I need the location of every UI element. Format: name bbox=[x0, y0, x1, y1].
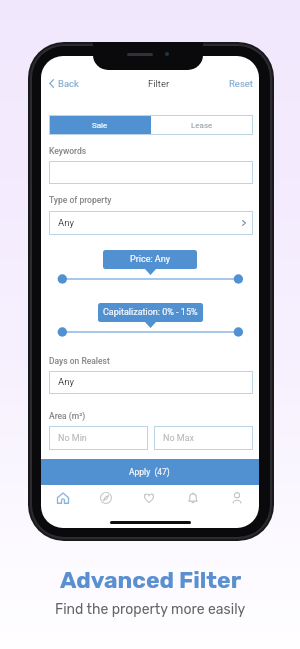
button[interactable]: Notifications bbox=[171, 484, 215, 512]
button[interactable]: Apply (47) bbox=[41, 459, 259, 485]
staticText: Area (m²) bbox=[49, 411, 86, 421]
staticText: Any bbox=[58, 376, 74, 387]
staticText: Advanced Filter bbox=[60, 566, 242, 593]
staticText: No Min bbox=[58, 433, 87, 444]
staticText: Lease bbox=[191, 121, 213, 130]
staticText: Filter bbox=[148, 78, 170, 89]
button[interactable]: No Min bbox=[49, 426, 148, 450]
button[interactable]: Favorites bbox=[127, 484, 171, 512]
staticText: Capitalization: 0% - 15% bbox=[103, 307, 198, 318]
staticText: Sale bbox=[92, 121, 108, 130]
staticText: Find the property more easily bbox=[55, 601, 246, 618]
staticText: Any bbox=[58, 217, 74, 228]
button[interactable]: Any bbox=[49, 371, 253, 394]
button[interactable]: Sale bbox=[49, 115, 151, 135]
button[interactable]: Lease bbox=[151, 115, 253, 135]
button[interactable]: Home bbox=[41, 484, 84, 512]
button[interactable]: Reset bbox=[227, 76, 255, 91]
staticText: Price: Any bbox=[130, 254, 170, 265]
button[interactable]: Profile bbox=[215, 484, 259, 512]
staticText: Keywords bbox=[49, 146, 87, 156]
button[interactable]: Any bbox=[49, 211, 253, 235]
button[interactable]: No Max bbox=[154, 426, 253, 450]
button[interactable]: Explore bbox=[84, 484, 127, 512]
staticText: Type of property bbox=[49, 195, 112, 205]
button[interactable]: Back bbox=[47, 76, 81, 91]
staticText: Reset bbox=[229, 78, 253, 89]
staticText: Days on Realest bbox=[49, 356, 110, 366]
staticText: Back bbox=[58, 78, 79, 89]
staticText: No Max bbox=[163, 433, 195, 444]
staticText: Apply (47) bbox=[129, 467, 170, 477]
button[interactable] bbox=[49, 161, 253, 184]
